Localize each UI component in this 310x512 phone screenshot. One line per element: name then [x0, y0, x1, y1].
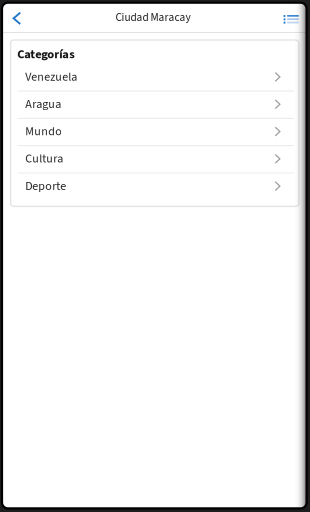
button[interactable]: Aragua: [11, 91, 299, 118]
staticText: Mundo: [25, 123, 62, 140]
button[interactable]: Mundo: [11, 118, 299, 145]
staticText: Deporte: [25, 178, 66, 195]
button[interactable]: Deporte: [11, 172, 299, 200]
staticText: Aragua: [25, 96, 61, 113]
button[interactable]: Venezuela: [11, 63, 299, 91]
button[interactable]: Cultura: [11, 145, 299, 172]
staticText: Venezuela: [25, 68, 77, 85]
button[interactable]: Back: [5, 4, 28, 33]
staticText: Ciudad Maracay: [116, 9, 191, 25]
staticText: Categorías: [17, 46, 74, 63]
staticText: Cultura: [25, 150, 63, 167]
button[interactable]: Menu: [278, 5, 304, 34]
